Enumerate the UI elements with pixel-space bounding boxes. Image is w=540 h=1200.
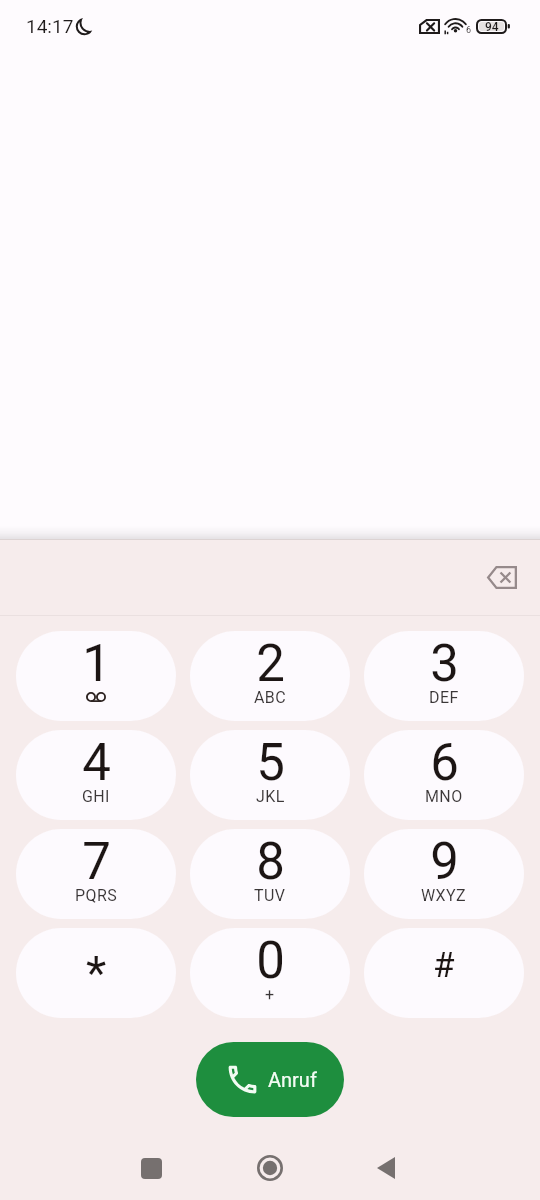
button[interactable]: 6	[364, 730, 524, 820]
staticText: 5	[256, 733, 285, 793]
button[interactable]: 0	[190, 928, 350, 1018]
staticText: *	[86, 945, 107, 1000]
staticText: 1	[82, 634, 111, 694]
button[interactable]: *	[16, 928, 176, 1018]
staticText: 2	[256, 634, 285, 694]
staticText: JKL	[256, 787, 285, 806]
staticText: MNO	[425, 787, 463, 806]
staticText: WXYZ	[421, 886, 467, 905]
staticText: 94	[485, 20, 499, 34]
button[interactable]: 7	[16, 829, 176, 919]
staticText: TUV	[254, 886, 286, 905]
staticText: PQRS	[75, 886, 118, 905]
staticText: 14:17	[26, 15, 74, 37]
staticText: 8	[256, 832, 285, 892]
staticText: 9	[430, 832, 459, 892]
button[interactable]: #	[364, 928, 524, 1018]
staticText: +	[265, 985, 275, 1004]
staticText: 0	[256, 931, 285, 991]
button[interactable]: Back	[356, 1138, 416, 1198]
button[interactable]: Home	[240, 1138, 300, 1198]
staticText: GHI	[82, 787, 110, 806]
button[interactable]: 3	[364, 631, 524, 721]
staticText: #	[433, 945, 455, 986]
staticText: DEF	[429, 688, 459, 707]
button[interactable]: 4	[16, 730, 176, 820]
button[interactable]: 5	[190, 730, 350, 820]
staticText: 7	[82, 832, 111, 892]
button[interactable]: Anruf	[196, 1042, 344, 1117]
staticText: 6	[430, 733, 459, 793]
button[interactable]: 1	[16, 631, 176, 721]
button[interactable]: 9	[364, 829, 524, 919]
button[interactable]: Recent apps	[121, 1138, 181, 1198]
staticText: Anruf	[268, 1068, 317, 1091]
staticText: 6	[466, 25, 472, 36]
staticText: 4	[82, 733, 111, 793]
button[interactable]: 8	[190, 829, 350, 919]
staticText: ABC	[254, 688, 287, 707]
staticText: 3	[430, 634, 459, 694]
button[interactable]: Backspace	[478, 553, 526, 601]
button[interactable]: 2	[190, 631, 350, 721]
